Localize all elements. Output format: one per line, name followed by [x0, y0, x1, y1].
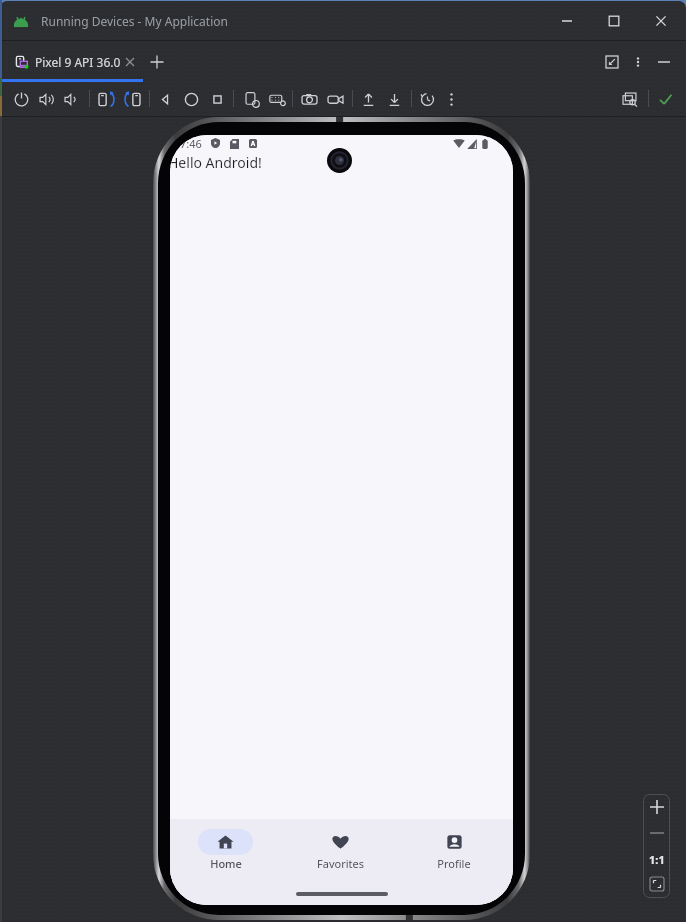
button[interactable]: Maximize	[591, 1, 637, 40]
button[interactable]: Minimize	[544, 1, 590, 40]
button[interactable]: Rotate left	[93, 86, 119, 112]
staticText: Hello Android!	[170, 153, 262, 172]
button[interactable]: Favorites	[285, 819, 399, 883]
button[interactable]: Zoom out	[643, 820, 670, 846]
button[interactable]: Inspect	[617, 86, 643, 112]
button[interactable]: Actual size	[643, 846, 670, 872]
button[interactable]: Dock	[600, 41, 624, 82]
button[interactable]: Download	[381, 86, 407, 112]
button[interactable]: Run	[652, 86, 678, 112]
staticText: Favorites	[317, 856, 364, 871]
button[interactable]: Home	[178, 86, 204, 112]
button[interactable]: Device settings	[239, 86, 265, 112]
button[interactable]: Volume down	[58, 86, 84, 112]
button[interactable]: Record screen	[322, 86, 348, 112]
button[interactable]: Rotate right	[119, 86, 145, 112]
button[interactable]: Close tab	[121, 41, 139, 82]
button[interactable]: Pixel 9 API 36.0	[0, 41, 141, 82]
staticText: Running Devices - My Application	[41, 13, 228, 29]
button[interactable]: Keyboard	[264, 86, 290, 112]
staticText: Pixel 9 API 36.0	[35, 54, 121, 70]
staticText: Home	[210, 856, 242, 871]
button[interactable]: Volume up	[33, 86, 59, 112]
button[interactable]: More options	[627, 41, 649, 82]
button[interactable]: Close	[638, 1, 684, 40]
button[interactable]: Upload	[355, 86, 381, 112]
button[interactable]: Hide tool window	[652, 41, 676, 82]
button[interactable]: Zoom in	[643, 794, 670, 820]
button[interactable]: Profile	[399, 819, 513, 883]
button[interactable]: Overview	[204, 86, 230, 112]
staticText: 1:1	[649, 852, 665, 867]
button[interactable]: Home	[170, 819, 285, 883]
button[interactable]: More	[438, 86, 464, 112]
button[interactable]: Back	[152, 86, 178, 112]
staticText: 7:46	[180, 136, 202, 151]
staticText: Profile	[437, 856, 471, 871]
button[interactable]: History	[414, 86, 440, 112]
button[interactable]: Add device	[143, 41, 171, 82]
button[interactable]: Power	[8, 86, 34, 112]
button[interactable]: Screenshot	[296, 86, 322, 112]
button[interactable]: Fit to screen	[643, 871, 670, 897]
